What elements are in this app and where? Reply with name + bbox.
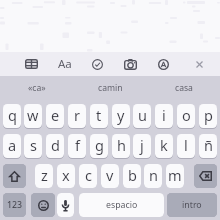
staticText: o — [182, 105, 191, 125]
staticText: camin — [98, 82, 123, 94]
staticText: g — [95, 135, 104, 155]
staticText: x — [62, 165, 70, 185]
staticText: u — [138, 105, 147, 125]
staticText: n — [149, 165, 158, 185]
staticText: ñ — [204, 135, 213, 155]
staticText: f — [75, 135, 80, 155]
button[interactable]: b — [123, 164, 141, 188]
staticText: v — [106, 165, 114, 185]
button[interactable]: camin — [74, 76, 147, 100]
button[interactable]: z — [35, 164, 53, 188]
button[interactable]: h — [112, 134, 130, 158]
staticText: k — [160, 135, 168, 155]
button[interactable]: q — [3, 104, 21, 128]
button[interactable]: Shift — [3, 164, 26, 188]
button[interactable]: i — [155, 104, 173, 128]
button[interactable]: «ca» — [0, 76, 74, 100]
button[interactable]: x — [57, 164, 75, 188]
staticText: w — [27, 105, 39, 125]
staticText: t — [96, 105, 102, 125]
staticText: p — [204, 105, 213, 125]
staticText: a — [8, 135, 17, 155]
button[interactable]: ñ — [199, 134, 217, 158]
button[interactable]: 123 — [3, 193, 26, 217]
button[interactable]: Markup — [151, 52, 175, 76]
button[interactable]: c — [79, 164, 97, 188]
button[interactable]: v — [101, 164, 119, 188]
button[interactable]: p — [199, 104, 217, 128]
button[interactable]: k — [155, 134, 173, 158]
staticText: q — [8, 105, 17, 125]
button[interactable]: Camera — [118, 52, 142, 76]
staticText: m — [168, 165, 182, 185]
button[interactable]: t — [90, 104, 108, 128]
staticText: j — [140, 135, 144, 155]
staticText: z — [41, 165, 48, 185]
staticText: b — [128, 165, 137, 185]
button[interactable]: d — [46, 134, 64, 158]
button[interactable]: espacio — [79, 193, 164, 217]
staticText: i — [162, 105, 166, 125]
button[interactable]: Backspace — [194, 164, 217, 188]
button[interactable]: Dictate — [57, 193, 74, 217]
staticText: s — [30, 135, 37, 155]
button[interactable]: Checklist — [85, 52, 109, 76]
button[interactable]: e — [46, 104, 64, 128]
button[interactable]: m — [166, 164, 184, 188]
button[interactable]: y — [112, 104, 130, 128]
button[interactable]: f — [68, 134, 86, 158]
button[interactable]: j — [133, 134, 151, 158]
button[interactable]: l — [177, 134, 195, 158]
staticText: d — [51, 135, 60, 155]
staticText: Aa — [58, 56, 72, 72]
staticText: intro — [182, 199, 202, 211]
staticText: e — [51, 105, 60, 125]
staticText: y — [117, 105, 125, 125]
button[interactable]: Text format — [53, 52, 77, 76]
staticText: «ca» — [28, 82, 46, 94]
button[interactable]: r — [68, 104, 86, 128]
button[interactable]: a — [3, 134, 21, 158]
button[interactable]: Insert table — [19, 52, 43, 76]
staticText: c — [85, 165, 92, 185]
button[interactable]: casa — [147, 76, 220, 100]
staticText: casa — [175, 82, 193, 94]
button[interactable]: o — [177, 104, 195, 128]
staticText: l — [184, 135, 188, 155]
button[interactable]: Hide keyboard — [187, 52, 211, 76]
button[interactable]: intro — [167, 193, 217, 217]
staticText: r — [74, 105, 80, 125]
button[interactable]: w — [24, 104, 42, 128]
staticText: h — [117, 135, 126, 155]
button[interactable]: s — [24, 134, 42, 158]
button[interactable]: n — [144, 164, 162, 188]
button[interactable]: Emoji — [31, 193, 55, 217]
button[interactable]: g — [90, 134, 108, 158]
staticText: espacio — [106, 199, 138, 211]
staticText: 123 — [7, 199, 23, 211]
button[interactable]: u — [133, 104, 151, 128]
